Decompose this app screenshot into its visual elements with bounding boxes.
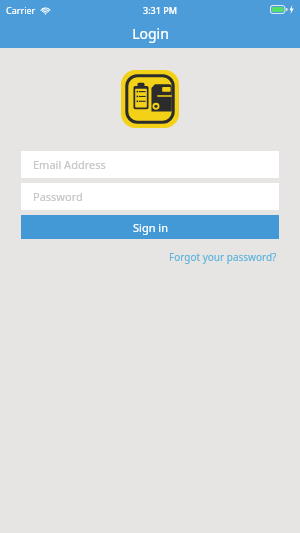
other: Wi-Fi signal: [40, 5, 51, 14]
other: Battery charging: [270, 5, 294, 14]
staticText: Carrier: [6, 4, 36, 16]
staticText: Forgot your password?: [169, 250, 277, 264]
button[interactable]: Email Address: [21, 151, 279, 178]
staticText: Sign in: [133, 220, 168, 235]
staticText: Login: [132, 24, 169, 43]
staticText: Password: [33, 189, 83, 204]
staticText: Email Address: [33, 157, 106, 172]
button[interactable]: Password: [21, 183, 279, 210]
staticText: 3:31 PM: [143, 4, 177, 16]
button[interactable]: Sign in: [21, 215, 279, 239]
other: App logo: [121, 70, 179, 128]
button[interactable]: Forgot your password?: [167, 247, 279, 267]
